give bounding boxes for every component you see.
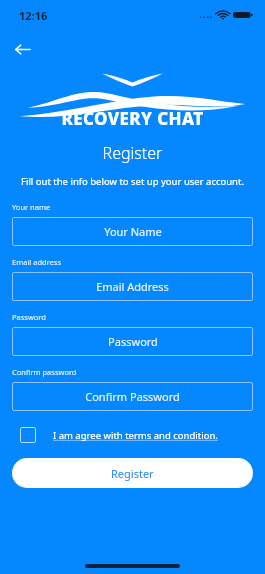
button[interactable]: Password (12, 327, 253, 356)
staticText: I am agree with terms and condition. (53, 429, 218, 442)
staticText: Fill out the info below to set up your u… (0, 175, 265, 188)
staticText: Password (108, 334, 158, 349)
staticText: Email address (12, 257, 62, 267)
staticText: Confirm password (12, 367, 77, 377)
button[interactable]: I am agree with terms and condition. (12, 427, 253, 443)
staticText: Register (111, 466, 154, 481)
button[interactable]: Confirm Password (12, 382, 253, 411)
button[interactable]: Email Address (12, 272, 253, 301)
staticText: Your name (12, 202, 51, 212)
button[interactable]: Your Name (12, 217, 253, 246)
staticText: Your Name (104, 224, 162, 239)
staticText: Email Address (96, 279, 169, 294)
button[interactable]: Register (12, 458, 253, 488)
staticText: RECOVERY CHAT (61, 107, 204, 130)
staticText: Register (0, 142, 265, 164)
staticText: Password (12, 312, 46, 322)
staticText: Confirm Password (85, 389, 180, 404)
button[interactable]: Back (7, 34, 37, 64)
staticText: 12:16 (19, 8, 48, 23)
